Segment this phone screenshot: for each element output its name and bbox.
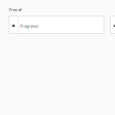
button[interactable]: Sulfates [110,16,115,33]
button[interactable]: Fragrance [9,16,104,33]
staticText: Fragrance [20,23,38,28]
staticText: Free of [9,7,21,12]
